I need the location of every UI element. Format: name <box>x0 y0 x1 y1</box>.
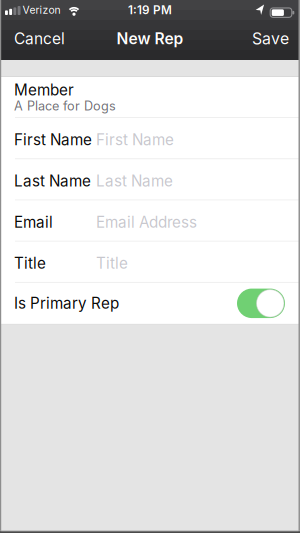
button[interactable]: Save <box>252 29 300 48</box>
staticText: First Name <box>14 131 92 149</box>
staticText: Email <box>14 213 53 231</box>
staticText: Email Address <box>96 213 197 231</box>
button[interactable]: Email <box>0 200 300 241</box>
staticText: A Place for Dogs <box>14 98 116 113</box>
staticText: Title <box>96 254 128 272</box>
button[interactable]: First Name <box>0 118 300 159</box>
staticText: 1:19 PM <box>128 3 172 17</box>
staticText: Title <box>14 254 46 272</box>
button[interactable]: Is Primary Rep <box>237 289 285 318</box>
staticText: Save <box>252 29 289 48</box>
button[interactable]: Title <box>0 242 300 283</box>
staticText: First Name <box>96 131 174 149</box>
staticText: Last Name <box>14 172 91 190</box>
staticText: Member <box>14 81 74 99</box>
staticText: Verizon <box>22 4 60 16</box>
staticText: Is Primary Rep <box>14 294 119 312</box>
staticText: Cancel <box>14 29 65 48</box>
staticText: New Rep <box>116 29 183 48</box>
staticText: Last Name <box>96 172 173 190</box>
button[interactable]: Last Name <box>0 159 300 200</box>
button[interactable]: Cancel <box>0 29 65 48</box>
